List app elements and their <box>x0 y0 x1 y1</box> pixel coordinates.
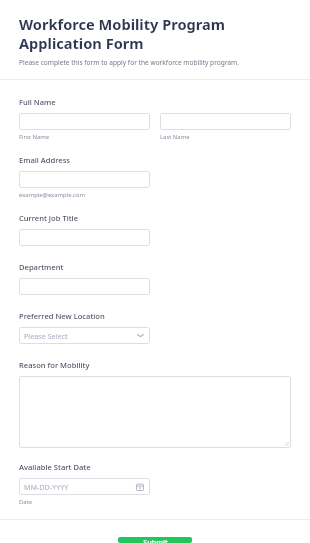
button[interactable]: Email Address <box>19 171 150 188</box>
button[interactable]: Last Name <box>160 113 291 130</box>
staticText: Current Job Title <box>19 213 79 223</box>
button[interactable]: First Name <box>19 113 150 130</box>
staticText: Please Select <box>24 331 68 341</box>
staticText: Workforce Mobility Program Application F… <box>19 14 291 53</box>
staticText: Full Name <box>19 97 56 107</box>
button[interactable]: Current Job Title <box>19 229 150 246</box>
staticText: MM-DD-YYYY <box>24 482 69 492</box>
staticText: Date <box>19 498 33 506</box>
button[interactable]: Submit <box>118 537 192 543</box>
staticText: Reason for Mobility <box>19 360 90 370</box>
staticText: Preferred New Location <box>19 311 105 321</box>
button[interactable]: Please Select <box>19 327 150 344</box>
staticText: Last Name <box>160 133 190 141</box>
staticText: Submit <box>143 537 168 543</box>
staticText: Email Address <box>19 155 71 165</box>
button[interactable]: Department <box>19 278 150 295</box>
other: Pick date <box>136 483 144 491</box>
staticText: Department <box>19 262 64 272</box>
staticText: Available Start Date <box>19 462 91 472</box>
button[interactable]: MM-DD-YYYY <box>19 478 150 495</box>
staticText: Please complete this form to apply for t… <box>19 58 239 67</box>
staticText: example@example.com <box>19 191 85 199</box>
button[interactable]: Reason for Mobility input <box>19 376 291 448</box>
staticText: First Name <box>19 133 50 141</box>
